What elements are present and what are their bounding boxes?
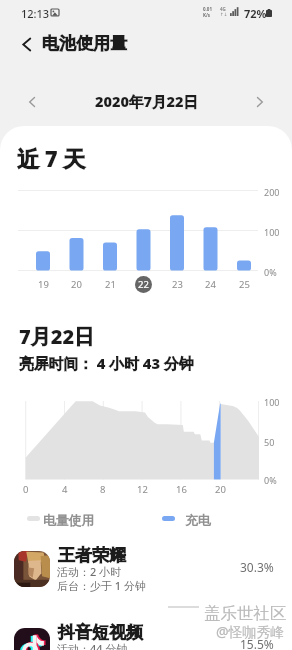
staticText: 亮屏时间： 4 小时 43 分钟 (19, 353, 194, 373)
staticText: 电量使用 (43, 513, 95, 529)
staticText: 4 (62, 483, 68, 495)
staticText: 15.5% (240, 636, 274, 650)
staticText: 0.01 (203, 6, 212, 12)
staticText: 充电 (185, 513, 211, 529)
staticText: 8 (100, 483, 106, 495)
staticText: @怪咖秀峰 (216, 622, 285, 641)
staticText: 200 (264, 186, 280, 198)
staticText: 活动：44 分钟 (57, 641, 128, 650)
button[interactable]: Next day (247, 89, 272, 114)
staticText: 100 (264, 226, 280, 238)
staticText: 21 (105, 278, 116, 291)
staticText: 50 (264, 436, 275, 448)
staticText: 4G (220, 6, 226, 12)
staticText: 20 (215, 483, 226, 495)
button[interactable]: Previous day (19, 89, 44, 114)
staticText: 盖乐世社区 (204, 603, 287, 624)
staticText: 近 7 天 (17, 143, 86, 173)
staticText: K/s (203, 12, 211, 18)
button[interactable] (0, 541, 292, 593)
staticText: 12:13 (21, 6, 50, 21)
staticText: 7月22日 (19, 323, 95, 350)
staticText: 0% (264, 266, 277, 278)
button[interactable]: Back (13, 31, 39, 57)
staticText: 30.3% (240, 559, 274, 575)
staticText: 100 (264, 396, 280, 408)
staticText: 活动：2 小时 (57, 564, 122, 579)
staticText: ↑↓ (220, 12, 228, 17)
staticText: 19 (38, 278, 49, 291)
staticText: 王者荣耀 (58, 545, 126, 566)
staticText: 0% (264, 474, 277, 486)
staticText: 25 (239, 278, 250, 291)
staticText: 20 (71, 278, 82, 291)
staticText: 24 (205, 278, 216, 291)
staticText: 抖音短视频 (58, 622, 143, 643)
staticText: 2020年7月22日 (95, 91, 198, 111)
staticText: 23 (172, 278, 183, 291)
staticText: 12 (137, 483, 148, 495)
staticText: 16 (176, 483, 187, 495)
staticText: 22 (138, 278, 149, 291)
button[interactable] (0, 618, 292, 650)
staticText: 电池使用量 (42, 33, 127, 54)
staticText: 0 (23, 483, 29, 495)
staticText: 72% (244, 6, 267, 21)
staticText: 后台：少于 1 分钟 (57, 578, 147, 593)
